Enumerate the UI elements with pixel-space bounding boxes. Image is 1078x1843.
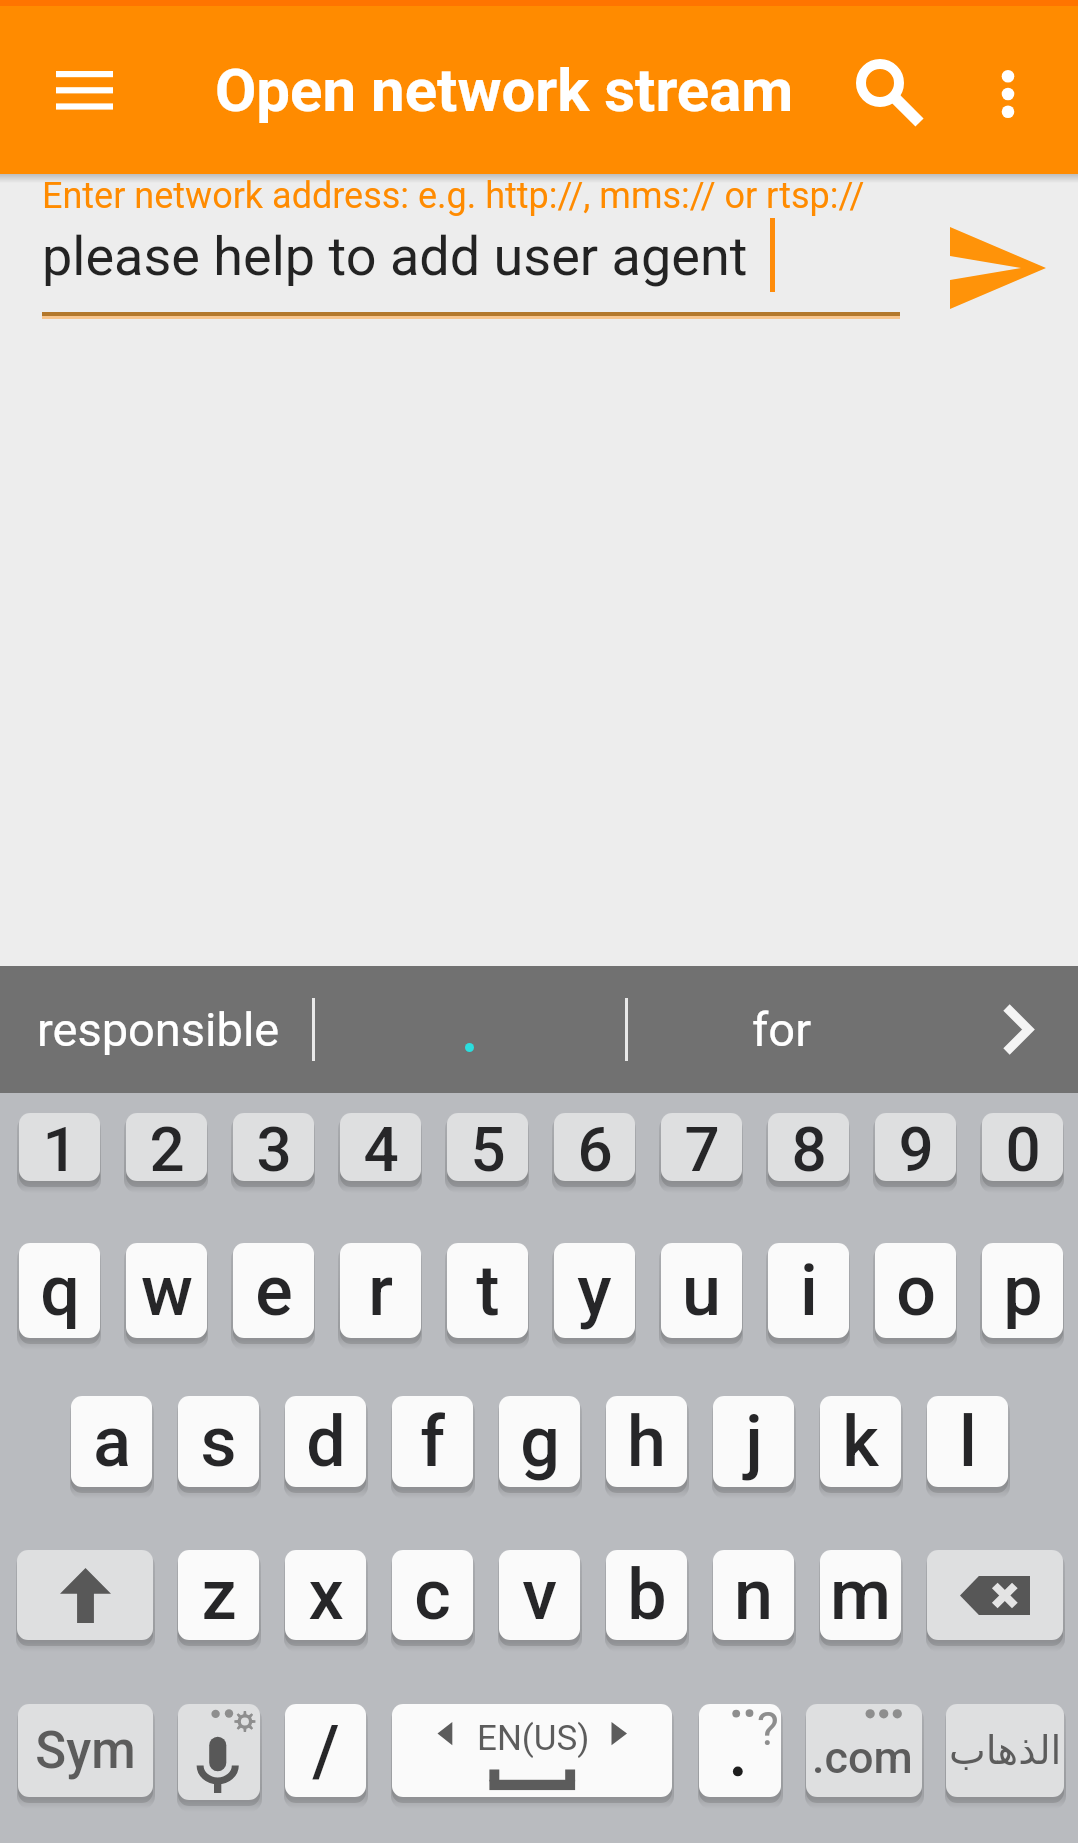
- staticText: 0: [1005, 1113, 1041, 1181]
- button[interactable]: h: [606, 1396, 687, 1487]
- staticText: s: [200, 1401, 237, 1483]
- staticText: g: [520, 1401, 560, 1483]
- button[interactable]: m: [820, 1550, 901, 1640]
- staticText: o: [896, 1250, 936, 1332]
- button[interactable]: 4: [340, 1113, 421, 1181]
- staticText: d: [306, 1401, 346, 1483]
- staticText: .com: [812, 1731, 913, 1784]
- staticText: n: [734, 1554, 773, 1636]
- staticText: 6: [577, 1113, 613, 1181]
- staticText: h: [627, 1401, 666, 1483]
- staticText: Open network stream: [215, 55, 794, 125]
- staticText: i: [800, 1250, 818, 1332]
- button[interactable]: 7: [661, 1113, 742, 1181]
- button[interactable]: a: [71, 1396, 152, 1487]
- button[interactable]: d: [285, 1396, 366, 1487]
- button[interactable]: v: [499, 1550, 580, 1640]
- button[interactable]: More suggestions: [968, 966, 1078, 1093]
- button[interactable]: Voice input: [178, 1704, 260, 1800]
- staticText: k: [842, 1401, 879, 1483]
- button[interactable]: j: [713, 1396, 794, 1487]
- staticText: l: [959, 1401, 977, 1483]
- button[interactable]: Backspace: [927, 1550, 1063, 1640]
- staticText: 7: [684, 1113, 720, 1181]
- button[interactable]: Open navigation drawer: [26, 35, 142, 145]
- button[interactable]: 8: [768, 1113, 849, 1181]
- staticText: EN(US): [477, 1718, 590, 1759]
- button[interactable]: 5: [447, 1113, 528, 1181]
- staticText: e: [255, 1250, 293, 1332]
- button[interactable]: n: [713, 1550, 794, 1640]
- button[interactable]: i: [768, 1243, 849, 1338]
- button[interactable]: k: [820, 1396, 901, 1487]
- button[interactable]: u: [661, 1243, 742, 1338]
- button[interactable]: y: [554, 1243, 635, 1338]
- staticText: t: [476, 1250, 500, 1332]
- button[interactable]: 0: [982, 1113, 1063, 1181]
- staticText: y: [577, 1250, 612, 1332]
- button[interactable]: Send: [920, 213, 1076, 323]
- staticText: 5: [470, 1113, 506, 1181]
- button[interactable]: 1: [19, 1113, 100, 1181]
- staticText: m: [830, 1554, 891, 1636]
- button[interactable]: z: [178, 1550, 259, 1640]
- staticText: v: [522, 1554, 557, 1636]
- button[interactable]: o: [875, 1243, 956, 1338]
- staticText: الذهاب: [949, 1728, 1062, 1773]
- button[interactable]: 6: [554, 1113, 635, 1181]
- button[interactable]: c: [392, 1550, 473, 1640]
- button[interactable]: e: [233, 1243, 314, 1338]
- button[interactable]: b: [606, 1550, 687, 1640]
- button[interactable]: Period: [699, 1704, 781, 1797]
- button[interactable]: s: [178, 1396, 259, 1487]
- button[interactable]: 3: [233, 1113, 314, 1181]
- staticText: p: [1003, 1250, 1043, 1332]
- staticText: j: [745, 1401, 763, 1483]
- button[interactable]: /: [285, 1704, 366, 1797]
- button[interactable]: f: [392, 1396, 473, 1487]
- button[interactable]: l: [927, 1396, 1008, 1487]
- staticText: x: [308, 1554, 344, 1636]
- staticText: u: [682, 1250, 721, 1332]
- button[interactable]: More options: [952, 38, 1064, 150]
- button[interactable]: x: [285, 1550, 366, 1640]
- staticText: responsible: [37, 1002, 280, 1057]
- staticText: 2: [149, 1113, 185, 1181]
- button[interactable]: Shift: [17, 1550, 153, 1640]
- staticText: f: [420, 1401, 445, 1483]
- staticText: z: [201, 1554, 237, 1636]
- staticText: q: [40, 1250, 80, 1332]
- button[interactable]: q: [19, 1243, 100, 1338]
- staticText: 9: [898, 1113, 934, 1181]
- staticText: b: [627, 1554, 667, 1636]
- button[interactable]: g: [499, 1396, 580, 1487]
- staticText: 8: [791, 1113, 827, 1181]
- button[interactable]: t: [447, 1243, 528, 1338]
- button[interactable]: 2: [126, 1113, 207, 1181]
- button[interactable]: w: [126, 1243, 207, 1338]
- staticText: a: [93, 1401, 131, 1483]
- button[interactable]: 9: [875, 1113, 956, 1181]
- button[interactable]: Space: [392, 1704, 672, 1797]
- staticText: w: [141, 1250, 193, 1332]
- staticText: 4: [363, 1113, 399, 1181]
- staticText: please help to add user agent: [42, 225, 748, 288]
- staticText: for: [752, 1002, 812, 1057]
- button[interactable]: p: [982, 1243, 1063, 1338]
- staticText: 1: [42, 1113, 78, 1181]
- staticText: /: [312, 1710, 340, 1792]
- staticText: 3: [256, 1113, 292, 1181]
- button[interactable]: r: [340, 1243, 421, 1338]
- staticText: Enter network address: e.g. http://, mms…: [42, 175, 865, 217]
- button[interactable]: Search: [834, 38, 946, 150]
- button[interactable]: .com: [806, 1704, 922, 1797]
- staticText: r: [368, 1250, 393, 1332]
- button[interactable]: responsible: [0, 966, 313, 1093]
- button[interactable]: الذهاب: [946, 1704, 1064, 1797]
- staticText: c: [414, 1554, 451, 1636]
- button[interactable]: Suggestion: [315, 966, 626, 1093]
- staticText: Sym: [35, 1721, 136, 1781]
- button[interactable]: Sym: [18, 1704, 153, 1797]
- button[interactable]: for: [628, 966, 968, 1093]
- staticText: ?: [757, 1704, 779, 1756]
